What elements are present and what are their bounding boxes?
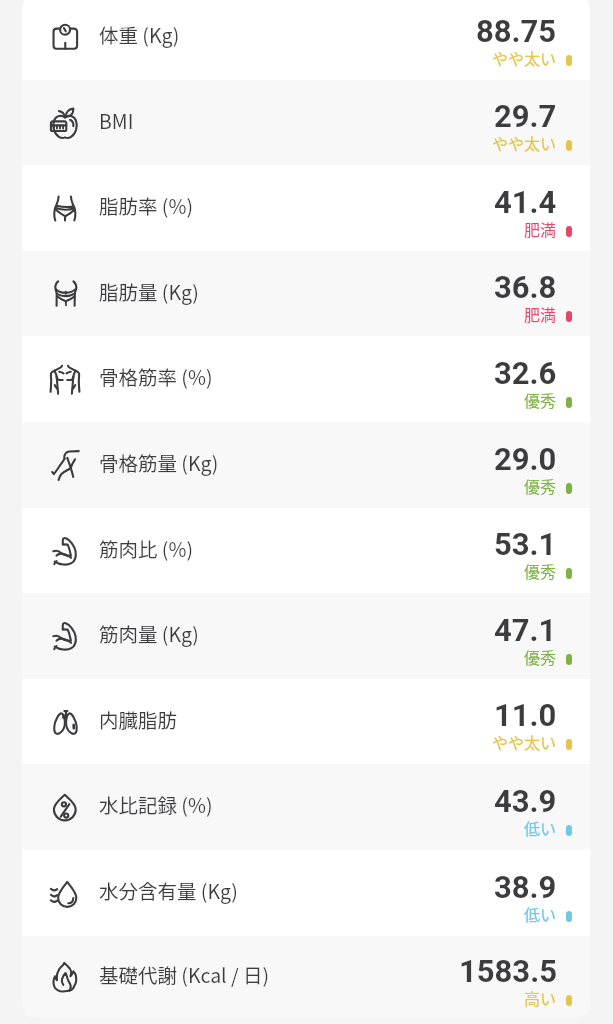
staticText: 47.1	[494, 612, 557, 648]
staticText: 38.9	[494, 869, 557, 905]
button[interactable]: Water content	[22, 850, 590, 936]
staticText: 1583.5	[459, 953, 557, 989]
staticText: 骨格筋率 (%)	[99, 362, 213, 390]
staticText: 肥満	[524, 302, 557, 325]
button[interactable]: Basal metabolism	[22, 936, 590, 1018]
staticText: 低い	[524, 816, 557, 839]
other: Visceral fat	[49, 706, 81, 738]
other: Basal metabolism	[49, 961, 81, 993]
button[interactable]: Body fat percentage	[22, 165, 590, 251]
staticText: 41.4	[494, 184, 557, 220]
button[interactable]: Body fat mass	[22, 251, 590, 336]
button[interactable]: BMI	[22, 80, 590, 165]
other: Weight	[49, 21, 81, 53]
staticText: 優秀	[524, 645, 557, 668]
button[interactable]: Muscle	[22, 593, 590, 679]
staticText: 36.8	[494, 269, 557, 305]
staticText: 体重 (Kg)	[99, 20, 180, 48]
staticText: 優秀	[524, 388, 557, 411]
other: Muscle	[49, 535, 81, 567]
button[interactable]: Skeletal muscle rate	[22, 336, 590, 422]
button[interactable]: Muscle	[22, 508, 590, 593]
other: Water percentage	[49, 791, 81, 823]
staticText: 脂肪率 (%)	[99, 191, 194, 219]
staticText: 11.0	[494, 697, 557, 733]
staticText: 水分含有量 (Kg)	[99, 876, 238, 904]
staticText: 低い	[524, 902, 557, 925]
staticText: 水比記録 (%)	[99, 790, 213, 818]
other: Body fat percentage	[49, 192, 81, 224]
staticText: 基礎代謝 (Kcal / 日)	[99, 960, 270, 988]
staticText: 43.9	[494, 783, 557, 819]
button[interactable]: Skeletal muscle mass	[22, 422, 590, 508]
button[interactable]: Visceral fat	[22, 679, 590, 764]
staticText: 32.6	[494, 355, 557, 391]
staticText: 筋肉比 (%)	[99, 534, 194, 562]
staticText: 骨格筋量 (Kg)	[99, 448, 219, 476]
other: BMI	[49, 107, 81, 139]
staticText: 肥満	[524, 217, 557, 240]
staticText: BMI	[99, 106, 134, 134]
staticText: 脂肪量 (Kg)	[99, 277, 199, 305]
staticText: 優秀	[524, 559, 557, 582]
staticText: 高い	[524, 986, 557, 1009]
other: Water content	[49, 877, 81, 909]
staticText: 88.75	[476, 13, 557, 49]
staticText: 29.7	[494, 98, 557, 134]
staticText: やや太い	[492, 131, 557, 154]
other: Muscle	[49, 620, 81, 652]
staticText: 筋肉量 (Kg)	[99, 619, 199, 647]
button[interactable]: Water percentage	[22, 764, 590, 850]
button[interactable]: Weight	[22, 0, 590, 80]
other: Body fat mass	[49, 278, 81, 310]
staticText: やや太い	[492, 46, 557, 69]
other: Skeletal muscle rate	[49, 363, 81, 395]
staticText: やや太い	[492, 730, 557, 753]
staticText: 優秀	[524, 474, 557, 497]
staticText: 53.1	[494, 526, 557, 562]
staticText: 内臓脂肪	[99, 705, 178, 733]
other: Skeletal muscle mass	[49, 449, 81, 481]
staticText: 29.0	[494, 441, 557, 477]
